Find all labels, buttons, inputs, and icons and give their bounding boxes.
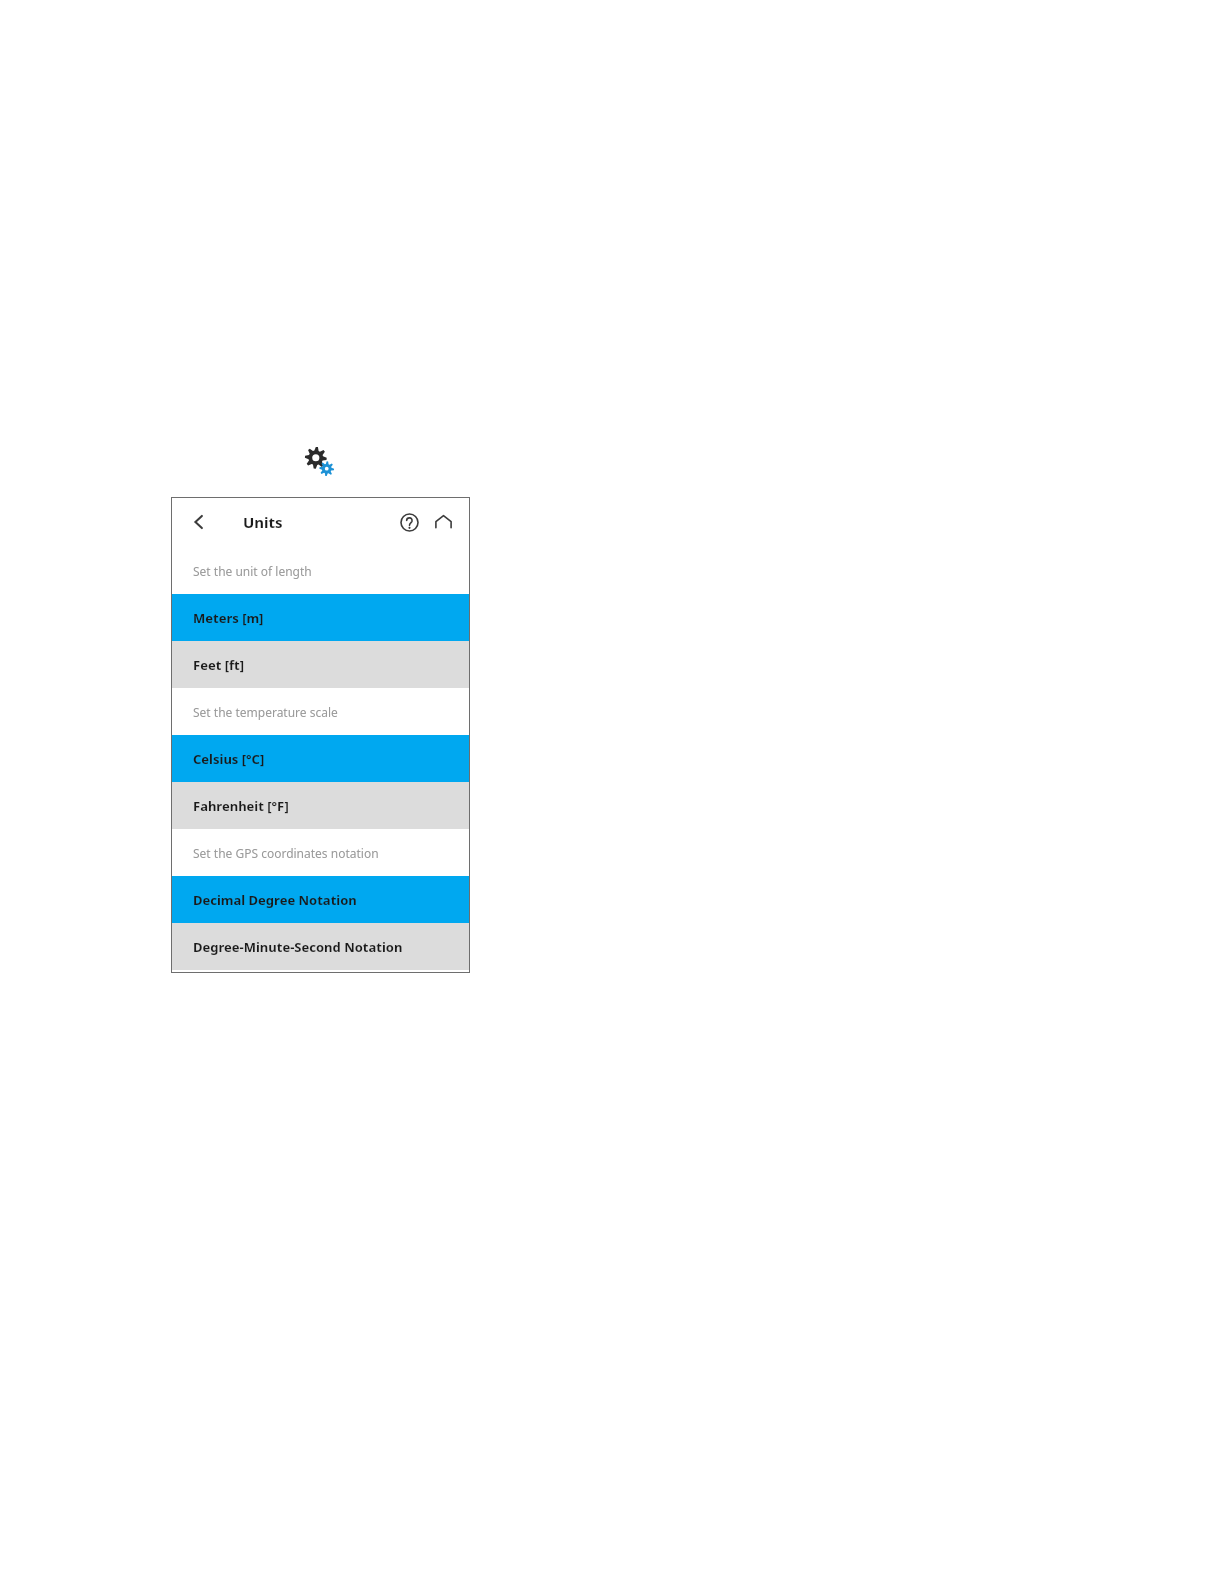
staticText: Celsius [°C] <box>193 750 265 768</box>
button[interactable]: Degree-Minute-Second Notation <box>171 923 470 970</box>
button[interactable]: Feet [ft] <box>171 641 470 688</box>
button[interactable]: Celsius [°C] <box>171 735 470 782</box>
button[interactable]: Help <box>394 507 424 537</box>
button[interactable]: Settings <box>299 441 341 483</box>
staticText: Set the temperature scale <box>193 704 338 720</box>
staticText: Fahrenheit [°F] <box>193 797 289 815</box>
staticText: Degree-Minute-Second Notation <box>193 938 403 956</box>
staticText: Set the GPS coordinates notation <box>193 845 379 861</box>
button[interactable]: Home <box>428 507 458 537</box>
button[interactable]: Back <box>184 507 214 537</box>
button[interactable]: Fahrenheit [°F] <box>171 782 470 829</box>
staticText: Units <box>243 512 283 532</box>
staticText: Decimal Degree Notation <box>193 891 357 909</box>
staticText: Feet [ft] <box>193 656 244 674</box>
staticText: Set the unit of length <box>193 563 312 579</box>
button[interactable]: Meters [m] <box>171 594 470 641</box>
button[interactable]: Decimal Degree Notation <box>171 876 470 923</box>
staticText: Meters [m] <box>193 609 264 627</box>
